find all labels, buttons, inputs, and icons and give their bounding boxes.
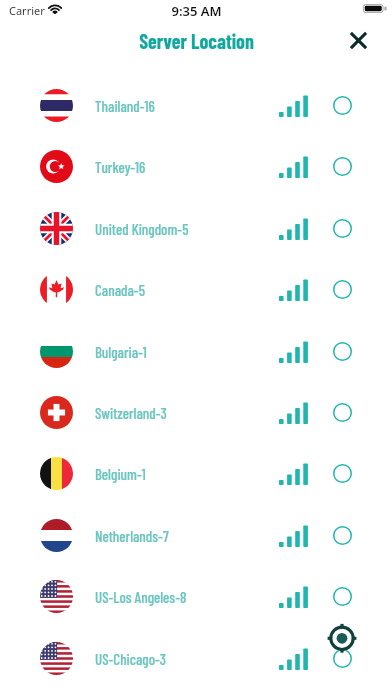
button[interactable]: Select US-Los Angeles-8 xyxy=(327,566,357,627)
staticText: US-Chicago-3 xyxy=(95,650,167,668)
staticText: US-Los Angeles-8 xyxy=(95,588,187,606)
staticText: Canada-5 xyxy=(95,281,145,299)
button[interactable]: US-Los Angeles-8 xyxy=(0,566,392,627)
other: Signal strength xyxy=(279,526,308,547)
button[interactable]: Select Canada-5 xyxy=(327,259,357,320)
button[interactable]: Select Thailand-16 xyxy=(327,75,357,136)
button[interactable]: Select Turkey-16 xyxy=(327,136,357,197)
staticText: Belgium-1 xyxy=(95,465,146,483)
other: Signal strength xyxy=(279,464,308,485)
button[interactable]: Close xyxy=(341,23,375,57)
other: Signal strength xyxy=(279,403,308,424)
button[interactable]: Bulgaria-1 xyxy=(0,321,392,382)
button[interactable]: Canada-5 xyxy=(0,259,392,320)
other: Signal strength xyxy=(279,96,308,117)
button[interactable]: Select Netherlands-7 xyxy=(327,505,357,566)
button[interactable]: Belgium-1 xyxy=(0,443,392,504)
other: Signal strength xyxy=(279,587,308,608)
staticText: Turkey-16 xyxy=(95,158,146,176)
staticText: Carrier xyxy=(9,3,45,18)
other: Signal strength xyxy=(279,157,308,178)
staticText: Server Location xyxy=(139,29,254,53)
staticText: Netherlands-7 xyxy=(95,527,169,545)
staticText: Switzerland-3 xyxy=(95,404,167,422)
button[interactable]: Switzerland-3 xyxy=(0,382,392,443)
other: Signal strength xyxy=(279,280,308,301)
other: Signal strength xyxy=(279,342,308,363)
staticText: United Kingdom-5 xyxy=(95,220,189,238)
button[interactable]: US-Chicago-3 xyxy=(0,628,392,689)
button[interactable]: United Kingdom-5 xyxy=(0,198,392,259)
staticText: Bulgaria-1 xyxy=(95,343,147,361)
button[interactable]: Select US-Chicago-3 xyxy=(327,628,357,689)
button[interactable]: Select Switzerland-3 xyxy=(327,382,357,443)
staticText: Thailand-16 xyxy=(95,97,155,115)
button[interactable]: Turkey-16 xyxy=(0,136,392,197)
button[interactable]: Select Belgium-1 xyxy=(327,443,357,504)
button[interactable]: Thailand-16 xyxy=(0,75,392,136)
button[interactable]: Select United Kingdom-5 xyxy=(327,198,357,259)
button[interactable]: Netherlands-7 xyxy=(0,505,392,566)
other: Signal strength xyxy=(279,219,308,240)
staticText: 9:35 AM xyxy=(171,2,222,20)
other: Signal strength xyxy=(279,649,308,670)
button[interactable]: Select Bulgaria-1 xyxy=(327,321,357,382)
